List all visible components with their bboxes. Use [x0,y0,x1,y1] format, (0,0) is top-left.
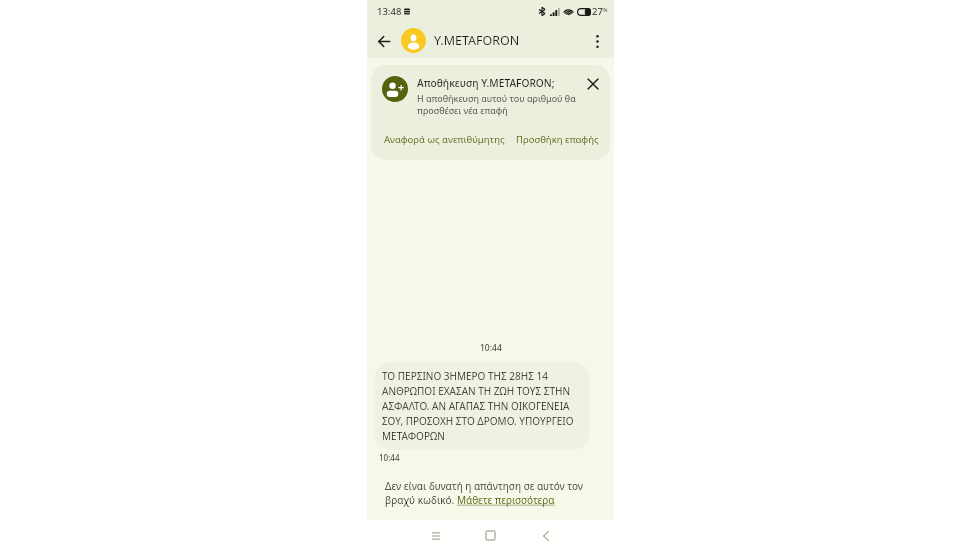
staticText: Προσθήκη επαφής [516,133,599,146]
staticText: % [603,6,608,13]
staticText: Y.METAFORON [434,32,520,49]
button[interactable]: More options [585,29,609,53]
staticText: Δεν είναι δυνατή η απάντηση σε αυτόν τον [385,479,583,493]
staticText: βραχύ κωδικό. [385,493,457,507]
button[interactable]: Μάθετε περισσότερα [457,493,555,507]
staticText: 13:48 [377,5,402,18]
button[interactable]: Αναφορά ως ανεπιθύμητης [382,130,507,149]
button[interactable]: Back [372,29,396,53]
staticText: 10:44 [480,342,502,354]
staticText: 10:44 [379,452,400,463]
staticText: ΤΟ ΠΕΡΣΙΝΟ 3ΗΜΕΡΟ ΤΗΣ 28ΗΣ 14 ΑΝΘΡΩΠΟΙ Ε… [382,369,574,443]
button[interactable]: Προσθήκη επαφής [514,130,601,149]
staticText: 27 [592,5,603,18]
button[interactable]: Recents [408,520,463,551]
button[interactable]: Dismiss [585,76,601,92]
staticText: Αποθήκευση Y.METAFORON; [417,76,555,90]
button[interactable]: Y.METAFORON [401,23,585,58]
button[interactable]: Back [518,520,573,551]
staticText: Η αποθήκευση αυτού του αριθμού θα προσθέ… [417,92,576,117]
button[interactable]: ΤΟ ΠΕΡΣΙΝΟ 3ΗΜΕΡΟ ΤΗΣ 28ΗΣ 14 ΑΝΘΡΩΠΟΙ Ε… [375,362,589,450]
button[interactable]: Home [463,520,518,551]
staticText: Αναφορά ως ανεπιθύμητης [384,133,505,146]
